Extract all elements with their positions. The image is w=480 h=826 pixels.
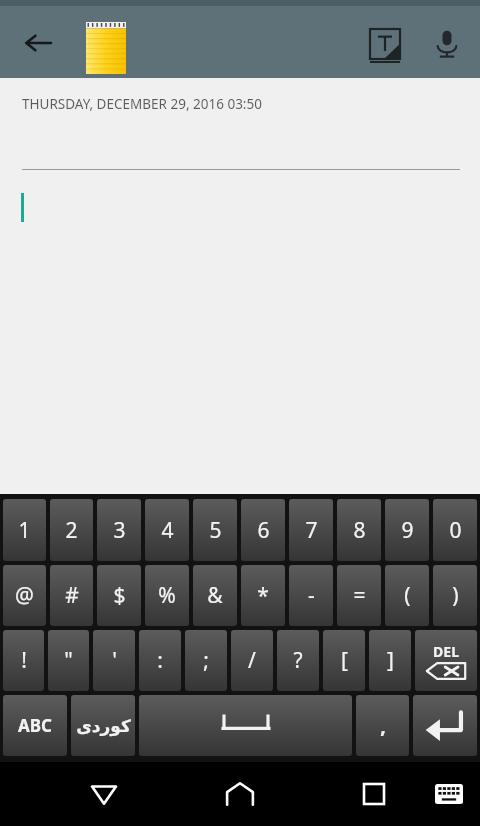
button[interactable]: 0 — [433, 499, 477, 561]
staticText: , — [380, 712, 386, 739]
button[interactable]: ; — [185, 630, 227, 691]
staticText: ABC — [18, 714, 52, 737]
button[interactable]: ! — [3, 630, 44, 691]
button[interactable]: & — [193, 565, 237, 626]
staticText: 3 — [113, 516, 126, 545]
button[interactable]: ] — [369, 630, 411, 691]
button[interactable]: 7 — [289, 499, 333, 561]
button[interactable]: ' — [93, 630, 135, 691]
staticText: % — [158, 581, 176, 610]
button[interactable]: % — [145, 565, 189, 626]
button[interactable]: 2 — [50, 499, 93, 561]
staticText: # — [65, 581, 79, 610]
button[interactable]: $ — [97, 565, 141, 626]
staticText: - — [308, 581, 315, 610]
staticText: 6 — [257, 516, 270, 545]
button[interactable]: ABC — [3, 695, 67, 756]
button[interactable]: Text formatting — [358, 22, 412, 66]
staticText: 2 — [65, 516, 78, 545]
staticText: [ — [341, 646, 348, 675]
staticText: ! — [21, 646, 27, 675]
staticText: 4 — [161, 516, 174, 545]
button[interactable]: کوردی — [71, 695, 135, 756]
button[interactable]: [ — [323, 630, 365, 691]
staticText: کوردی — [76, 716, 131, 736]
button[interactable]: Delete — [415, 630, 477, 691]
button[interactable]: : — [139, 630, 181, 691]
staticText: 9 — [401, 516, 414, 545]
button[interactable]: ) — [433, 565, 477, 626]
button[interactable]: Back — [72, 762, 136, 826]
button[interactable]: # — [50, 565, 93, 626]
staticText: ] — [387, 646, 394, 675]
staticText: / — [248, 646, 256, 675]
staticText: ' — [112, 646, 117, 675]
staticText: 7 — [305, 516, 318, 545]
button[interactable]: ( — [385, 565, 429, 626]
button[interactable]: Recent apps — [342, 762, 406, 826]
button[interactable]: 3 — [97, 499, 141, 561]
staticText: @ — [15, 581, 34, 610]
button[interactable]: @ — [3, 565, 46, 626]
staticText: ; — [203, 646, 209, 675]
staticText: 5 — [209, 516, 222, 545]
button[interactable]: , — [356, 695, 409, 756]
button[interactable]: Home — [208, 762, 272, 826]
staticText: 0 — [449, 516, 462, 545]
staticText: : — [157, 646, 163, 675]
button[interactable]: 4 — [145, 499, 189, 561]
button[interactable]: = — [337, 565, 381, 626]
button[interactable]: 6 — [241, 499, 285, 561]
staticText: THURSDAY, DECEMBER 29, 2016 03:50 — [22, 95, 262, 113]
button[interactable]: - — [289, 565, 333, 626]
button[interactable]: Enter — [413, 695, 477, 756]
button[interactable]: " — [48, 630, 89, 691]
button[interactable]: 1 — [3, 499, 46, 561]
staticText: = — [353, 581, 366, 610]
button[interactable]: Voice input — [420, 22, 474, 66]
staticText: ( — [404, 581, 411, 610]
button[interactable]: Back — [12, 25, 64, 61]
staticText: " — [64, 646, 73, 675]
staticText: 1 — [18, 516, 31, 545]
button[interactable]: ? — [277, 630, 319, 691]
staticText: ? — [293, 646, 303, 675]
staticText: 8 — [353, 516, 366, 545]
staticText: * — [257, 581, 269, 610]
button[interactable]: Switch keyboard — [424, 762, 474, 826]
staticText: ) — [452, 581, 459, 610]
button[interactable]: 8 — [337, 499, 381, 561]
staticText: & — [207, 581, 223, 610]
button[interactable]: 9 — [385, 499, 429, 561]
staticText: $ — [113, 581, 126, 610]
button[interactable]: / — [231, 630, 273, 691]
button[interactable]: Space — [139, 695, 352, 756]
button[interactable]: Notepad — [80, 18, 132, 78]
staticText: DEL — [433, 642, 459, 661]
button[interactable]: * — [241, 565, 285, 626]
button[interactable]: 5 — [193, 499, 237, 561]
